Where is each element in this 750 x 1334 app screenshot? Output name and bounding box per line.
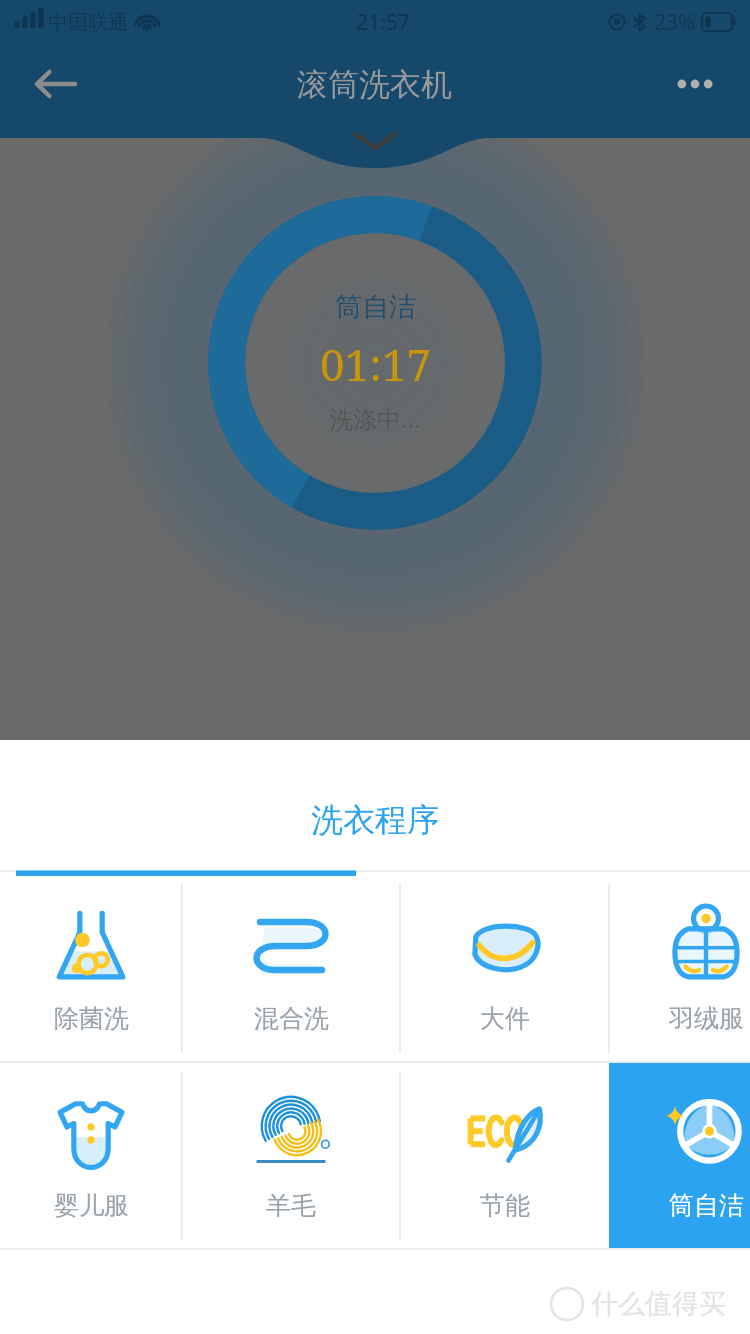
staticText: 混合洗 xyxy=(254,1003,329,1034)
staticText: 中国联通 xyxy=(48,10,128,35)
button[interactable]: 节能 xyxy=(400,1063,609,1248)
staticText: 羊毛 xyxy=(266,1190,316,1221)
staticText: 婴儿服 xyxy=(54,1190,129,1221)
staticText: 大件 xyxy=(480,1003,530,1034)
staticText: 21:57 xyxy=(356,8,410,37)
button[interactable]: 混合洗 xyxy=(182,876,400,1061)
staticText: 滚筒洗衣机 xyxy=(297,65,452,104)
staticText: 洗衣程序 xyxy=(0,800,750,840)
button[interactable]: 婴儿服 xyxy=(0,1063,182,1248)
staticText: 23% xyxy=(654,8,696,37)
staticText: 羽绒服 xyxy=(669,1003,744,1034)
staticText: 洗涤中... xyxy=(329,402,421,435)
staticText: 筒自洁 xyxy=(669,1190,744,1221)
staticText: 01:17 xyxy=(320,334,431,394)
button[interactable]: Back xyxy=(22,51,88,117)
staticText: 除菌洗 xyxy=(54,1003,129,1034)
button[interactable]: Expand xyxy=(0,128,750,178)
button[interactable]: 羽绒服 xyxy=(609,876,750,1061)
staticText: 节能 xyxy=(480,1190,530,1221)
button[interactable]: More options xyxy=(662,51,728,117)
button[interactable]: 筒自洁 xyxy=(609,1063,750,1248)
staticText: 筒自洁 xyxy=(335,290,416,324)
button[interactable]: 大件 xyxy=(400,876,609,1061)
button[interactable]: 除菌洗 xyxy=(0,876,182,1061)
button[interactable]: 羊毛 xyxy=(182,1063,400,1248)
staticText: 什么值得买 xyxy=(591,1287,726,1321)
